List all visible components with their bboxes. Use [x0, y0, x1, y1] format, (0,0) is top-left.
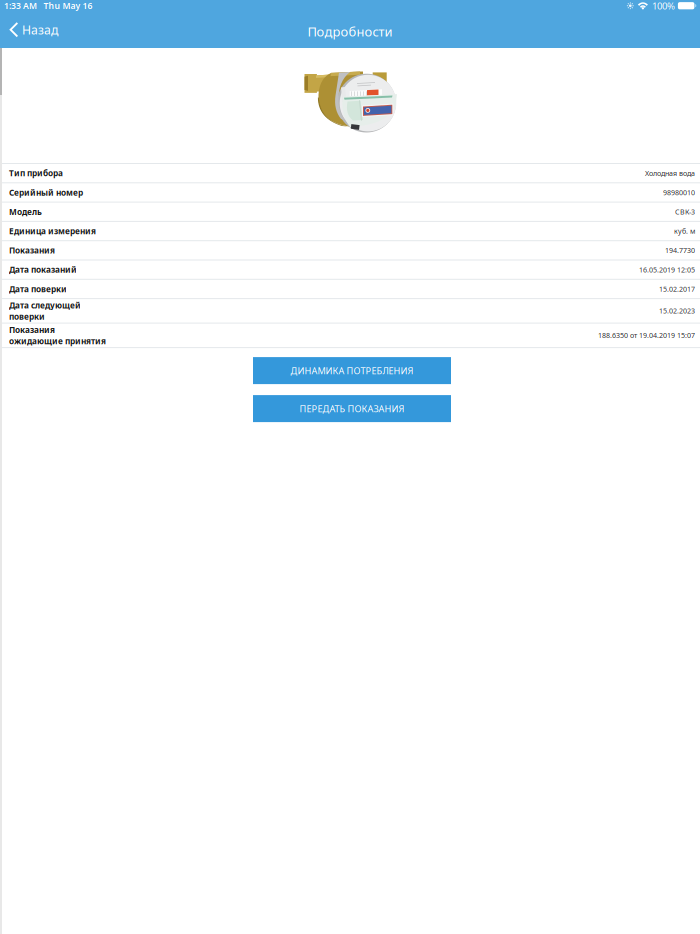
- staticText: Единица измерения: [9, 225, 96, 237]
- staticText: Модель: [9, 206, 42, 217]
- staticText: СВК-3: [675, 207, 695, 216]
- staticText: Показания: [9, 245, 55, 256]
- staticText: ДИНАМИКА ПОТРЕБЛЕНИЯ: [290, 364, 413, 377]
- button[interactable]: ПЕРЕДАТЬ ПОКАЗАНИЯ: [253, 395, 451, 422]
- staticText: Подробности: [307, 23, 392, 40]
- staticText: ПЕРЕДАТЬ ПОКАЗАНИЯ: [299, 402, 404, 415]
- staticText: куб. м: [674, 226, 695, 236]
- button[interactable]: Назад: [0, 16, 64, 42]
- staticText: Тип прибора: [9, 167, 63, 179]
- button[interactable]: ДИНАМИКА ПОТРЕБЛЕНИЯ: [253, 357, 451, 384]
- staticText: 188.6350 от 19.04.2019 15:07: [598, 330, 695, 340]
- staticText: 98980010: [663, 188, 695, 197]
- staticText: Thu May 16: [43, 0, 92, 12]
- staticText: Дата следующей: [9, 300, 81, 311]
- staticText: 1:33 AM: [4, 0, 37, 12]
- staticText: 15.02.2023: [659, 306, 695, 316]
- staticText: 15.02.2017: [659, 284, 695, 294]
- staticText: поверки: [9, 311, 45, 322]
- staticText: Холодная вода: [645, 168, 695, 178]
- staticText: 100%: [652, 0, 675, 12]
- staticText: Дата поверки: [9, 283, 67, 295]
- staticText: Дата показаний: [9, 264, 77, 275]
- staticText: 194.7730: [665, 245, 695, 255]
- staticText: Назад: [22, 21, 58, 38]
- staticText: 16.05.2019 12:05: [639, 265, 695, 274]
- staticText: ожидающие принятия: [9, 335, 106, 347]
- staticText: Серийный номер: [9, 187, 83, 198]
- staticText: Показания: [9, 324, 55, 335]
